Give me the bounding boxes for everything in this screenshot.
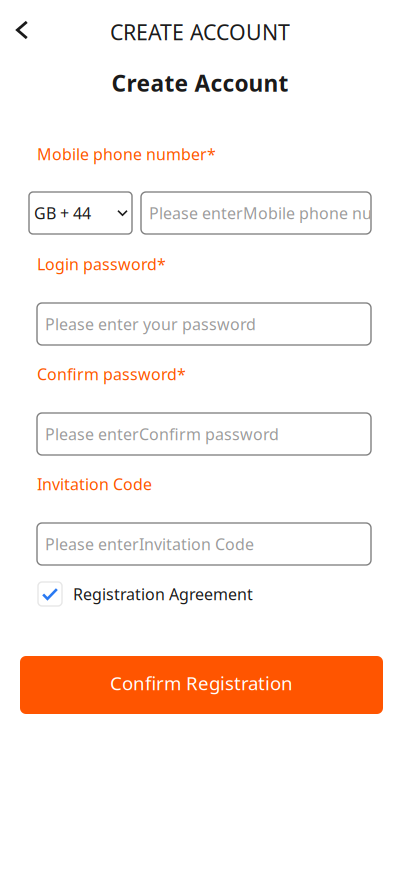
staticText: Login password*: [37, 253, 166, 275]
staticText: Please enterMobile phone nu: [149, 202, 372, 224]
staticText: Please enterInvitation Code: [45, 533, 254, 555]
button[interactable]: Registration Agreement: [38, 582, 372, 606]
staticText: Please enterConfirm password: [45, 423, 279, 445]
staticText: Mobile phone number*: [37, 143, 216, 165]
staticText: GB + 44: [34, 202, 91, 224]
button[interactable]: Please enterMobile phone nu: [141, 192, 371, 234]
button[interactable]: Please enterConfirm password: [37, 413, 371, 455]
staticText: Registration Agreement: [73, 583, 253, 605]
staticText: CREATE ACCOUNT: [110, 18, 290, 46]
staticText: Create Account: [111, 68, 288, 98]
staticText: Invitation Code: [37, 473, 152, 495]
staticText: Confirm password*: [37, 363, 186, 385]
button[interactable]: Back: [0, 8, 44, 52]
staticText: Confirm Registration: [110, 671, 293, 695]
staticText: Please enter your password: [45, 313, 256, 335]
button[interactable]: Please enterInvitation Code: [37, 523, 371, 565]
button[interactable]: Confirm Registration: [20, 656, 383, 714]
button[interactable]: GB + 44: [29, 192, 132, 234]
button[interactable]: Please enter your password: [37, 303, 371, 345]
